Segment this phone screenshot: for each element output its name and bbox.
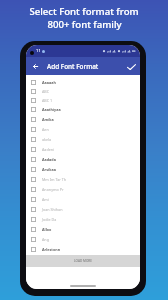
- staticText: 11: [36, 48, 41, 54]
- staticText: Arlestonn: [42, 247, 61, 252]
- button[interactable]: Jodie Da: [26, 214, 140, 224]
- button[interactable]: Amika: [26, 114, 140, 124]
- button[interactable]: Mm Im Tar Th: [26, 174, 140, 184]
- staticText: ABC: [42, 89, 50, 94]
- staticText: Aadada: [42, 157, 56, 162]
- staticText: Aadeni: [42, 147, 55, 152]
- staticText: Aen: [42, 127, 49, 132]
- staticText: Add Font Format: [47, 62, 99, 71]
- button[interactable]: Back: [30, 61, 41, 72]
- staticText: Select Font format from: [29, 5, 139, 18]
- button[interactable]: Arlestonn: [26, 244, 140, 254]
- staticText: Anonymo Pr: [42, 187, 64, 192]
- staticText: Mm Im Tar Th: [42, 177, 67, 182]
- button[interactable]: akela: [26, 134, 140, 144]
- staticText: Joan Shihan: [42, 207, 63, 212]
- staticText: ABC 1: [42, 98, 53, 103]
- button[interactable]: LOAD MORE: [26, 255, 140, 267]
- button[interactable]: Anonymo Pr: [26, 184, 140, 194]
- button[interactable]: Aen: [26, 124, 140, 134]
- button[interactable]: Alloo: [26, 224, 140, 234]
- staticText: Amika: [42, 117, 54, 122]
- staticText: Alloo: [42, 227, 52, 232]
- staticText: Ami: [42, 197, 49, 202]
- button[interactable]: ABC 1: [26, 96, 140, 105]
- button[interactable]: Aadada: [26, 154, 140, 164]
- staticText: 800+ font family: [47, 18, 122, 31]
- staticText: Arsikaa: [42, 167, 56, 172]
- button[interactable]: Arsikaa: [26, 164, 140, 174]
- button[interactable]: Done: [126, 61, 137, 72]
- staticText: Aaaaah: [42, 80, 56, 85]
- button[interactable]: Ami: [26, 194, 140, 204]
- staticText: Jodie Da: [42, 217, 57, 222]
- button[interactable]: Aaathiyaa: [26, 105, 140, 114]
- button[interactable]: ABC: [26, 87, 140, 96]
- button[interactable]: Aaaaah: [26, 78, 140, 87]
- staticText: LOAD MORE: [74, 259, 92, 263]
- staticText: akela: [42, 137, 52, 142]
- button[interactable]: Joan Shihan: [26, 204, 140, 214]
- staticText: Ang: [42, 237, 49, 242]
- button[interactable]: Aadeni: [26, 144, 140, 154]
- button[interactable]: Ang: [26, 234, 140, 244]
- staticText: Aaathiyaa: [42, 107, 61, 112]
